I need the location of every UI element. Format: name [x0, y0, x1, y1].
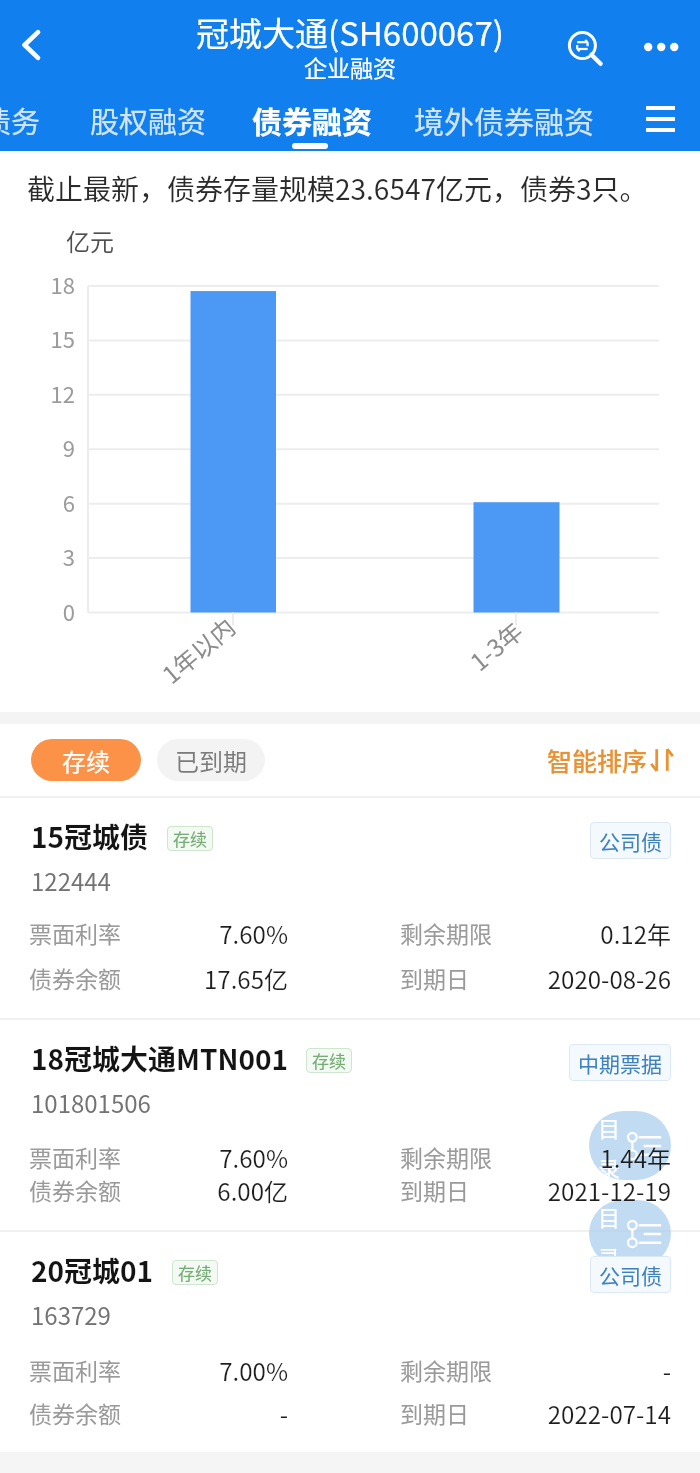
staticText: 2020-08-26 [510, 961, 671, 996]
staticText: 剩余期限 [400, 916, 492, 949]
staticText: 0.12年 [510, 916, 671, 951]
staticText: 122444 [31, 863, 111, 898]
staticText: - [150, 1396, 288, 1431]
staticText: 企业融资 [304, 50, 396, 83]
staticText: 目 [598, 1200, 621, 1232]
button[interactable]: 已到期 [157, 739, 265, 781]
staticText: 2021-12-19 [510, 1173, 671, 1208]
staticText: 到期日 [400, 1173, 469, 1206]
staticText: - [510, 1353, 671, 1388]
staticText: 6.00亿 [150, 1173, 288, 1208]
staticText: 1.44年 [510, 1140, 671, 1175]
staticText: 剩余期限 [400, 1353, 492, 1386]
staticText: 存续 [62, 743, 110, 778]
staticText: 截止最新，债券存量规模23.6547亿元，债券3只。 [27, 168, 648, 209]
staticText: 9 [31, 431, 75, 463]
staticText: 亿元 [66, 223, 114, 258]
staticText: 已到期 [175, 743, 247, 778]
button[interactable]: 债券融资 [240, 94, 384, 139]
staticText: 7.60% [150, 1140, 288, 1175]
button[interactable]: 刷新 [555, 19, 613, 77]
button[interactable]: 境外债券融资 [402, 94, 606, 139]
staticText: 18 [31, 268, 75, 300]
staticText: 债务 [0, 99, 41, 141]
staticText: 境外债券融资 [414, 98, 594, 141]
button[interactable]: 20冠城01 [0, 1230, 700, 1452]
staticText: 债券余额 [29, 1396, 121, 1429]
staticText: 到期日 [400, 961, 469, 994]
button[interactable]: 存续 [31, 739, 141, 781]
staticText: 6 [31, 486, 75, 518]
button[interactable]: 更多 [636, 18, 694, 76]
staticText: 股权融资 [90, 99, 207, 141]
staticText: 存续 [312, 1048, 346, 1073]
staticText: 冠城大通(SH600067) [196, 8, 504, 56]
staticText: 17.65亿 [150, 961, 288, 996]
staticText: 3 [31, 540, 75, 572]
staticText: 101801506 [31, 1085, 151, 1120]
staticText: 2022-07-14 [510, 1396, 671, 1431]
staticText: 智能排序 [547, 742, 648, 778]
staticText: 票面利率 [29, 916, 121, 949]
staticText: 到期日 [400, 1396, 469, 1429]
button[interactable]: 股权融资 [78, 94, 219, 139]
staticText: 公司债 [599, 826, 662, 856]
staticText: 目 [598, 1111, 621, 1143]
button[interactable]: 目录 [589, 1200, 671, 1267]
staticText: 12 [31, 377, 75, 409]
staticText: 公司债 [599, 1260, 662, 1290]
staticText: 163729 [31, 1297, 111, 1332]
staticText: 票面利率 [29, 1140, 121, 1173]
staticText: 录 [598, 1240, 621, 1267]
staticText: 20冠城01 [31, 1250, 154, 1291]
staticText: 1-3年 [462, 613, 529, 678]
staticText: 15冠城债 [31, 816, 149, 857]
button[interactable]: 返回 [0, 14, 62, 76]
staticText: 存续 [173, 826, 207, 851]
button[interactable]: 智能排序 [547, 742, 674, 778]
button[interactable]: 15冠城债 [0, 796, 700, 1018]
staticText: 债券余额 [29, 961, 121, 994]
staticText: 1年以内 [154, 608, 242, 691]
button[interactable]: 菜单 [636, 96, 684, 144]
staticText: 存续 [178, 1260, 212, 1285]
staticText: 录 [598, 1151, 621, 1180]
staticText: 18冠城大通MTN001 [31, 1038, 288, 1079]
staticText: 剩余期限 [400, 1140, 492, 1173]
staticText: 7.60% [150, 916, 288, 951]
staticText: 债券融资 [252, 98, 372, 141]
button[interactable]: 债务 [0, 94, 50, 139]
staticText: 7.00% [150, 1353, 288, 1388]
staticText: 0 [31, 595, 75, 627]
staticText: 票面利率 [29, 1353, 121, 1386]
staticText: 中期票据 [578, 1048, 662, 1078]
button[interactable]: 目录 [589, 1111, 671, 1180]
staticText: 15 [31, 322, 75, 354]
staticText: 债券余额 [29, 1173, 121, 1206]
button[interactable]: 18冠城大通MTN001 [0, 1018, 700, 1230]
